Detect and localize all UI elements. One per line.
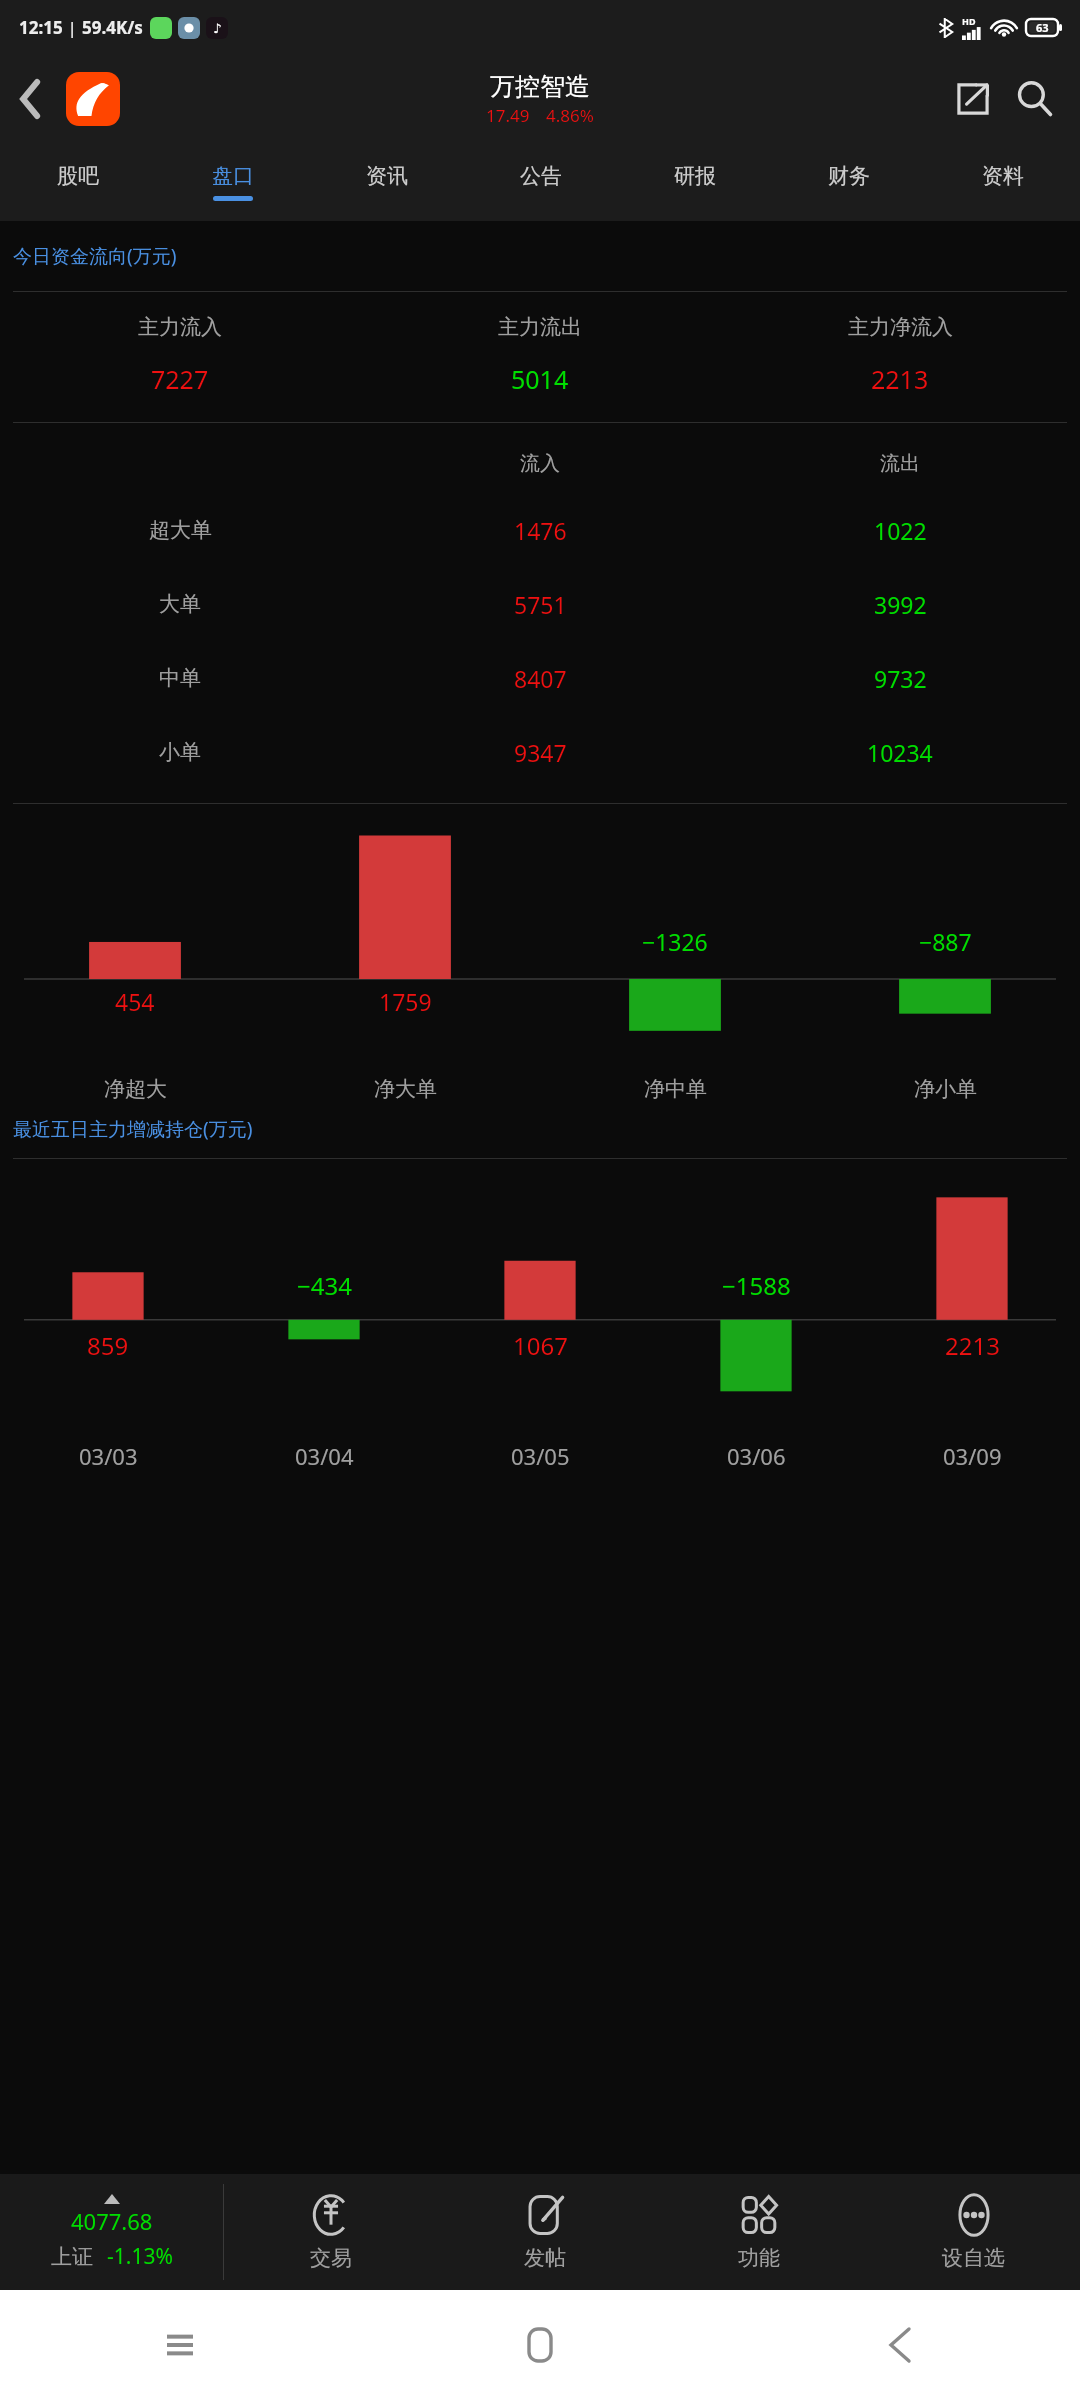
staticText: 1022 — [874, 515, 927, 546]
staticText: 净中单 — [644, 1076, 707, 1102]
staticText: -1.13% — [107, 2242, 173, 2271]
staticText: 03/03 — [79, 1441, 138, 1471]
button[interactable]: Share — [942, 68, 1004, 130]
button[interactable]: 公告 — [464, 143, 618, 221]
staticText: 主力流出 — [498, 314, 582, 340]
button[interactable]: 设自选 — [866, 2174, 1080, 2290]
staticText: 4077.68 — [71, 2206, 153, 2236]
button[interactable]: Recents — [0, 2290, 360, 2400]
staticText: 超大单 — [149, 517, 212, 543]
staticText: 净大单 — [374, 1076, 437, 1102]
button[interactable]: 4077.68 — [0, 2174, 223, 2290]
button[interactable]: 发帖 — [438, 2174, 652, 2290]
staticText: 1067 — [513, 1329, 568, 1362]
staticText: 17.49 — [486, 104, 530, 127]
button[interactable]: Home — [360, 2290, 720, 2400]
staticText: 交易 — [310, 2245, 352, 2271]
staticText: 大单 — [159, 591, 201, 617]
staticText: 盘口 — [212, 163, 254, 189]
staticText: 5014 — [511, 362, 569, 396]
staticText: 03/09 — [943, 1441, 1002, 1471]
staticText: 上证 — [51, 2244, 93, 2270]
staticText: 主力净流入 — [848, 314, 953, 340]
staticText: | — [63, 16, 82, 39]
staticText: 03/04 — [295, 1441, 354, 1471]
staticText: −887 — [919, 926, 972, 957]
staticText: 净小单 — [914, 1076, 977, 1102]
staticText: 流出 — [880, 451, 920, 476]
staticText: 研报 — [674, 163, 716, 189]
staticText: 4.86% — [546, 104, 594, 127]
staticText: 中单 — [159, 665, 201, 691]
staticText: 03/05 — [511, 1441, 570, 1471]
button[interactable]: Back — [720, 2290, 1080, 2400]
button[interactable]: 财务 — [772, 143, 926, 221]
staticText: −434 — [297, 1269, 352, 1302]
staticText: 12:15 — [19, 16, 63, 39]
staticText: 3992 — [874, 589, 927, 620]
staticText: HD — [962, 15, 976, 27]
staticText: 发帖 — [524, 2245, 566, 2271]
button[interactable]: 大单 — [0, 567, 1080, 641]
button[interactable]: 中单 — [0, 641, 1080, 715]
button[interactable]: Search — [1004, 68, 1066, 130]
button[interactable]: 小单 — [0, 715, 1080, 789]
button[interactable]: 股吧 — [0, 143, 155, 221]
button[interactable]: 超大单 — [0, 493, 1080, 567]
staticText: 资料 — [982, 163, 1024, 189]
staticText: 净超大 — [104, 1076, 167, 1102]
staticText: 设自选 — [942, 2245, 1005, 2271]
staticText: 7227 — [151, 362, 209, 396]
button[interactable]: 资料 — [926, 143, 1080, 221]
staticText: 1759 — [379, 986, 432, 1017]
staticText: 9347 — [514, 737, 567, 768]
staticText: 最近五日主力增减持仓(万元) — [13, 1116, 253, 1142]
button[interactable]: 资讯 — [310, 143, 464, 221]
staticText: 10234 — [867, 737, 933, 768]
staticText: 公告 — [520, 163, 562, 189]
button[interactable]: 盘口 — [155, 143, 310, 221]
staticText: 2213 — [945, 1329, 1000, 1362]
staticText: −1326 — [642, 926, 708, 957]
staticText: 9732 — [874, 663, 927, 694]
staticText: 主力流入 — [138, 314, 222, 340]
staticText: 今日资金流向(万元) — [13, 243, 177, 269]
button[interactable]: 功能 — [652, 2174, 866, 2290]
staticText: 63 — [1036, 20, 1049, 35]
staticText: 859 — [87, 1329, 129, 1362]
staticText: 功能 — [738, 2245, 780, 2271]
button[interactable]: App logo — [62, 68, 124, 130]
staticText: 1476 — [514, 515, 567, 546]
staticText: 59.4K/s — [82, 16, 143, 39]
staticText: ♪ — [213, 21, 222, 36]
staticText: 财务 — [828, 163, 870, 189]
staticText: 2213 — [871, 362, 929, 396]
button[interactable]: 交易 — [224, 2174, 438, 2290]
staticText: 资讯 — [366, 163, 408, 189]
staticText: 5751 — [514, 589, 567, 620]
staticText: 454 — [115, 986, 155, 1017]
staticText: 流入 — [520, 451, 560, 476]
staticText: 8407 — [514, 663, 567, 694]
button[interactable]: Back — [0, 68, 62, 130]
staticText: 03/06 — [727, 1441, 786, 1471]
button[interactable]: 研报 — [618, 143, 772, 221]
staticText: 小单 — [159, 739, 201, 765]
staticText: −1588 — [722, 1269, 791, 1302]
staticText: 股吧 — [57, 163, 99, 189]
staticText: 万控智造 — [490, 71, 590, 102]
